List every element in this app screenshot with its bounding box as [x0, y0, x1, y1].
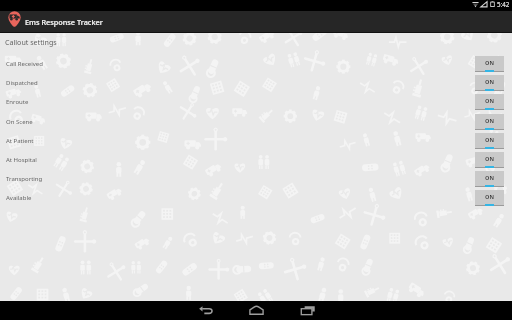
staticText: ON: [485, 78, 494, 86]
staticText: ON: [485, 136, 494, 144]
staticText: 5:42: [497, 0, 510, 8]
staticText: ON: [485, 59, 494, 67]
button[interactable]: Call Received toggle, on: [475, 56, 504, 72]
button[interactable]: Available toggle, on: [475, 190, 504, 206]
staticText: ON: [485, 155, 494, 163]
staticText: ON: [485, 117, 494, 125]
staticText: Ems Response Tracker: [25, 17, 103, 27]
staticText: ON: [485, 193, 494, 201]
staticText: Available: [6, 194, 32, 202]
button[interactable]: At Hospital toggle, on: [475, 152, 504, 168]
staticText: At Patient: [6, 137, 34, 145]
button[interactable]: Call Received: [0, 54, 512, 73]
button[interactable]: Available: [0, 188, 512, 207]
button[interactable]: Dispatched toggle, on: [475, 75, 504, 91]
staticText: Call Received: [6, 60, 43, 68]
button[interactable]: On Scene: [0, 112, 512, 131]
button[interactable]: Ems Response Tracker: [0, 11, 512, 32]
staticText: Dispatched: [6, 79, 38, 87]
button[interactable]: At Patient: [0, 131, 512, 150]
button[interactable]: On Scene toggle, on: [475, 114, 504, 130]
staticText: Callout settings: [5, 37, 57, 47]
button[interactable]: At Hospital: [0, 150, 512, 169]
button[interactable]: Enroute: [0, 92, 512, 111]
staticText: Enroute: [6, 98, 29, 106]
staticText: Transporting: [6, 175, 43, 183]
button[interactable]: Home: [231, 301, 282, 320]
staticText: At Hospital: [6, 156, 37, 164]
button[interactable]: Dispatched: [0, 73, 512, 92]
staticText: On Scene: [6, 118, 33, 126]
staticText: ON: [485, 174, 494, 182]
button[interactable]: Transporting toggle, on: [475, 171, 504, 187]
button[interactable]: At Patient toggle, on: [475, 133, 504, 149]
button[interactable]: Enroute toggle, on: [475, 94, 504, 110]
button[interactable]: Recents: [282, 301, 333, 320]
button[interactable]: Transporting: [0, 169, 512, 188]
staticText: ON: [485, 97, 494, 105]
button[interactable]: Back: [180, 301, 231, 320]
